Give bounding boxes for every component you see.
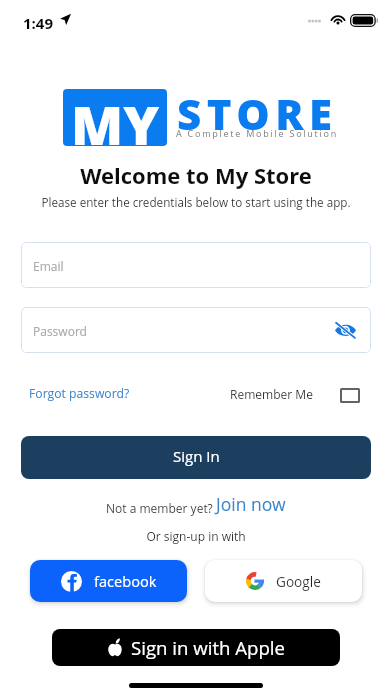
staticText: 1:49 [23, 13, 53, 33]
staticText: STORE [177, 85, 338, 142]
button[interactable]: Sign in with Apple [52, 629, 340, 666]
staticText: Email [33, 258, 64, 274]
button[interactable]: Join now [216, 492, 286, 516]
staticText: Not a member yet? [106, 500, 216, 516]
staticText: Google [276, 572, 321, 591]
staticText: Or sign-up in with [0, 528, 392, 544]
button[interactable]: Show password [331, 316, 359, 344]
staticText: A Complete Mobile Solution [176, 127, 339, 139]
button[interactable]: Forgot password? [29, 385, 130, 402]
staticText: MY [71, 89, 160, 145]
other: Location [60, 13, 71, 25]
staticText: facebook [94, 571, 157, 591]
staticText: Sign In [173, 446, 220, 466]
staticText: Please enter the credentials below to st… [0, 194, 392, 210]
button[interactable]: Sign In [21, 436, 371, 479]
staticText: Remember Me [230, 386, 313, 402]
button[interactable]: Password [21, 307, 371, 353]
staticText: Welcome to My Store [0, 160, 392, 190]
button[interactable]: facebook [30, 560, 187, 602]
staticText: Password [33, 323, 87, 339]
other: Remember Me checkbox [340, 388, 360, 403]
button[interactable]: Remember Me [230, 386, 360, 402]
staticText: Sign in with Apple [131, 635, 285, 660]
button[interactable]: Google [205, 560, 362, 602]
button[interactable]: Email [21, 242, 371, 288]
